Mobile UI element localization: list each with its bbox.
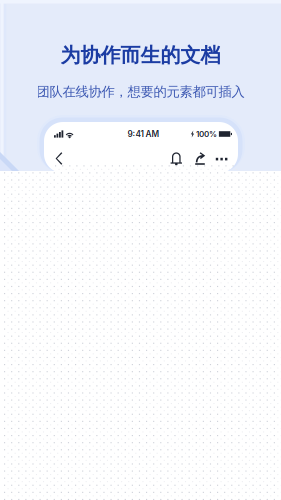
staticText: 团队在线协作，想要的元素都可插入 [36, 84, 244, 100]
button[interactable]: Share [182, 152, 206, 165]
button[interactable]: Notifications [171, 152, 182, 165]
staticText: 9:41 AM [127, 129, 159, 139]
button[interactable]: Back [55, 152, 62, 165]
staticText: 100% [196, 129, 217, 139]
button[interactable]: More [206, 152, 227, 165]
staticText: 为协作而生的文档 [60, 43, 220, 68]
